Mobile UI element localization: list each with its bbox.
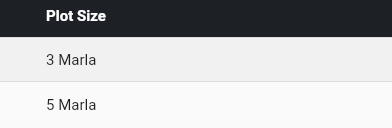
- staticText: Plot Size: [46, 7, 106, 25]
- button[interactable]: Plot Size: [0, 0, 392, 37]
- staticText: 5 Marla: [46, 96, 97, 114]
- button[interactable]: 5 Marla: [0, 82, 392, 128]
- staticText: 3 Marla: [46, 51, 97, 69]
- button[interactable]: 3 Marla: [0, 38, 392, 81]
